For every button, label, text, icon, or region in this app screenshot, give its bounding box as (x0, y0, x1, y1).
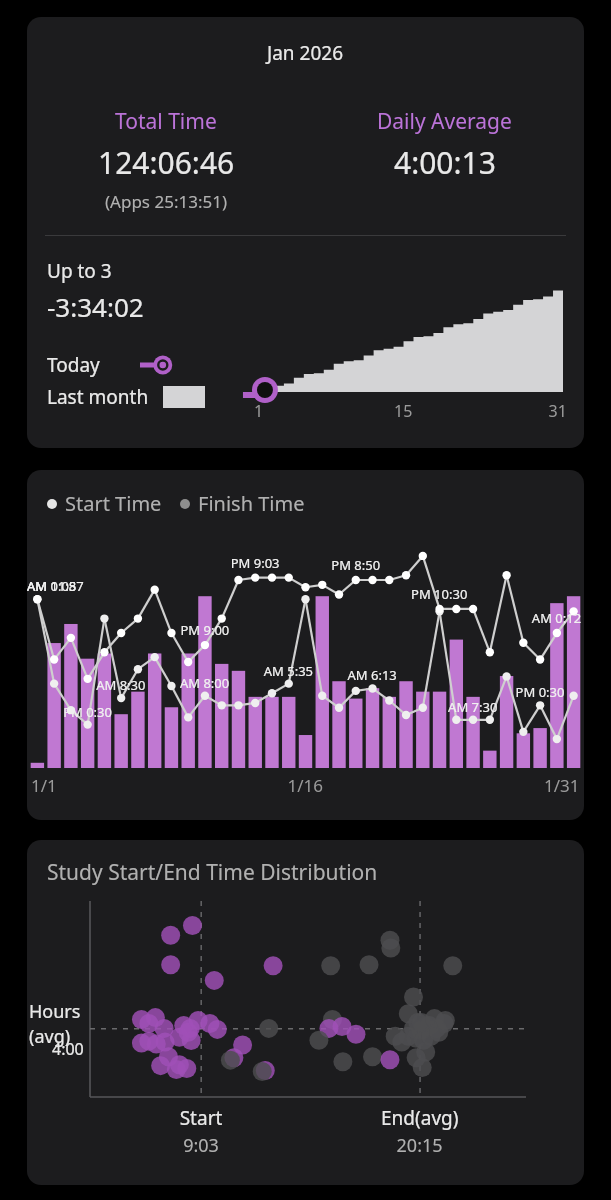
staticText: 4:00:13 (394, 142, 496, 183)
staticText: (Apps 25:13:51) (105, 190, 227, 213)
staticText: Study Start/End Time Distribution (47, 858, 378, 887)
staticText: Up to 3 (47, 258, 112, 284)
button[interactable]: Study Start/End Time Distribution (27, 840, 584, 1185)
staticText: Start Time (65, 490, 162, 517)
button[interactable]: Jan 2026 (27, 17, 584, 448)
staticText: Finish Time (198, 490, 305, 517)
staticText: 124:06:46 (98, 142, 235, 183)
staticText: -3:34:02 (47, 289, 144, 324)
staticText: Total Time (115, 107, 217, 136)
button[interactable]: Start Time (27, 470, 584, 820)
staticText: Last month (47, 384, 149, 410)
staticText: Jan 2026 (267, 40, 344, 66)
staticText: Today (47, 352, 100, 378)
staticText: Daily Average (377, 107, 512, 136)
